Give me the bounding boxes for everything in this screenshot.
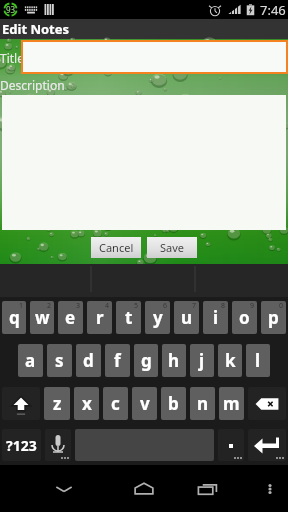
staticText: m: [223, 392, 240, 415]
staticText: g: [141, 349, 152, 372]
button[interactable]: Save: [147, 237, 197, 258]
button[interactable]: 8: [203, 301, 228, 334]
staticText: j: [199, 349, 205, 372]
staticText: Cancel: [99, 240, 134, 255]
staticText: r: [96, 306, 104, 329]
button[interactable]: h: [162, 344, 186, 377]
staticText: d: [83, 349, 94, 372]
button[interactable]: g: [134, 344, 158, 377]
staticText: Title: [0, 50, 24, 66]
staticText: 4: [105, 301, 110, 311]
staticText: Edit Notes: [2, 20, 70, 38]
button[interactable]: ?123: [2, 429, 41, 461]
staticText: p: [268, 306, 279, 329]
button[interactable]: Backspace: [248, 387, 286, 420]
staticText: 5: [134, 301, 139, 311]
button[interactable]: 7: [174, 301, 199, 334]
staticText: c: [111, 392, 120, 415]
staticText: k: [225, 349, 236, 372]
staticText: n: [197, 392, 209, 415]
staticText: e: [65, 306, 76, 329]
staticText: 3: [76, 301, 81, 311]
button[interactable]: 1: [2, 301, 26, 334]
staticText: w: [35, 306, 50, 329]
button[interactable]: Hide keyboard: [46, 471, 82, 507]
staticText: b: [168, 392, 179, 415]
staticText: 7:46: [260, 1, 286, 19]
button[interactable]: More options: [257, 476, 283, 502]
staticText: ?123: [6, 436, 37, 455]
staticText: u: [181, 306, 193, 329]
staticText: i: [213, 306, 219, 329]
button[interactable]: a: [18, 344, 43, 377]
staticText: y: [153, 306, 163, 329]
staticText: t: [125, 306, 133, 329]
button[interactable]: Cancel: [91, 237, 141, 258]
staticText: h: [168, 349, 180, 372]
staticText: a: [25, 349, 36, 372]
staticText: z: [53, 392, 62, 415]
staticText: f: [114, 349, 121, 372]
button[interactable]: 9: [232, 301, 257, 334]
button[interactable]: 2: [30, 301, 54, 334]
staticText: q: [9, 306, 20, 329]
staticText: l: [255, 349, 261, 372]
button[interactable]: f: [105, 344, 130, 377]
staticText: 6: [163, 301, 168, 311]
button[interactable]: 4: [87, 301, 112, 334]
button[interactable]: 6: [145, 301, 170, 334]
button[interactable]: x: [74, 387, 99, 420]
staticText: s: [55, 349, 64, 372]
staticText: 7: [192, 301, 197, 311]
staticText: v: [140, 392, 150, 415]
button[interactable]: 3: [58, 301, 83, 334]
button[interactable]: Voice input: [45, 429, 71, 461]
button[interactable]: Enter: [248, 429, 286, 461]
button[interactable]: Shift: [2, 387, 40, 420]
staticText: 8: [221, 301, 226, 311]
staticText: 1: [19, 301, 24, 311]
staticText: 9: [250, 301, 255, 311]
staticText: Save: [160, 240, 185, 255]
button[interactable]: Edit Notes: [0, 19, 288, 39]
button[interactable]: d: [76, 344, 101, 377]
button[interactable]: c: [103, 387, 128, 420]
button[interactable]: b: [161, 387, 186, 420]
button[interactable]: l: [246, 344, 270, 377]
button[interactable]: z: [44, 387, 70, 420]
button[interactable]: m: [219, 387, 244, 420]
button[interactable]: 5: [116, 301, 141, 334]
button[interactable]: k: [218, 344, 242, 377]
button[interactable]: v: [132, 387, 157, 420]
button[interactable]: j: [190, 344, 214, 377]
button[interactable]: Home: [126, 471, 162, 507]
button[interactable]: Recents: [190, 471, 226, 507]
staticText: Description: [0, 77, 65, 93]
staticText: o: [239, 306, 250, 329]
button[interactable]: n: [190, 387, 215, 420]
staticText: 2: [47, 301, 52, 311]
button[interactable]: Period: [218, 429, 244, 461]
staticText: 93: [6, 4, 16, 15]
staticText: x: [82, 392, 92, 415]
button[interactable]: s: [47, 344, 72, 377]
button[interactable]: 0: [261, 301, 286, 334]
staticText: 0: [279, 301, 284, 311]
